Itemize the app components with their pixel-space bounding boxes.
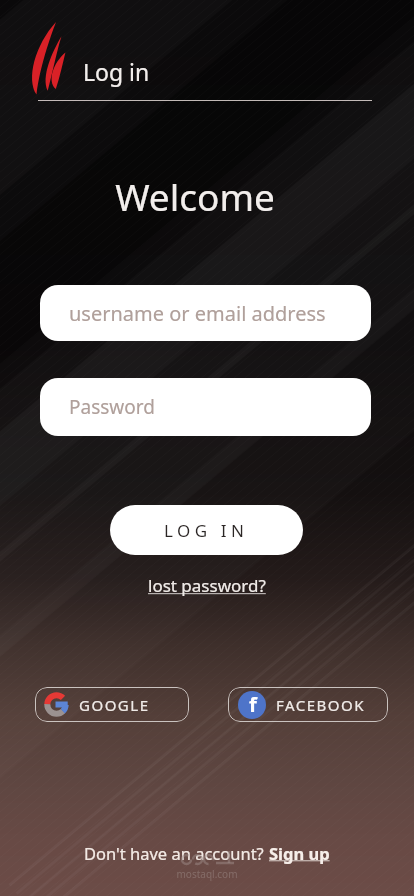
staticText: GOOGLE [79, 695, 150, 715]
staticText: Password [69, 394, 155, 420]
button[interactable]: Password [40, 378, 371, 436]
button[interactable]: GOOGLE [35, 687, 189, 722]
button[interactable]: username or email address [40, 285, 371, 341]
button[interactable]: LOG IN [110, 505, 303, 555]
staticText: mostaql.com [0, 867, 414, 881]
button[interactable]: lost password? [148, 574, 266, 597]
button[interactable]: f [228, 687, 388, 722]
staticText: Don't have an account? [84, 842, 269, 864]
staticText: username or email address [69, 300, 326, 327]
staticText: Log in [83, 56, 150, 87]
staticText: Welcome [0, 171, 402, 221]
staticText: FACEBOOK [276, 695, 366, 715]
staticText: LOG IN [164, 519, 249, 542]
staticText: f [249, 691, 257, 718]
button[interactable]: Sign up [269, 842, 330, 864]
